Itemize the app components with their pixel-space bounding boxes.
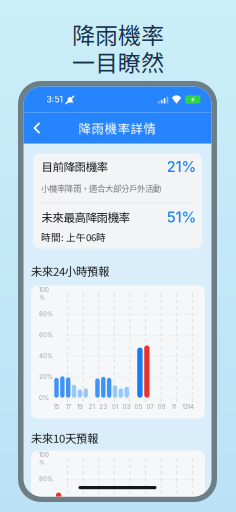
staticText: 19 [77, 403, 83, 410]
staticText: 20% [39, 373, 53, 380]
staticText: 51% [166, 208, 196, 226]
staticText: 21 [89, 403, 95, 410]
staticText: 60% [39, 331, 53, 339]
staticText: 09 [158, 403, 166, 410]
staticText: 40% [39, 352, 53, 360]
staticText: 21% [166, 157, 196, 176]
staticText: 14 [188, 403, 194, 410]
staticText: 降雨機率 [72, 17, 164, 51]
staticText: 時間: 上午06時 [41, 230, 106, 244]
staticText: 未來最高降雨機率 [41, 209, 129, 225]
staticText: 未來24小時預報 [31, 262, 109, 279]
staticText: 07 [147, 403, 154, 410]
staticText: 01 [112, 403, 118, 410]
staticText: 80% [39, 475, 53, 483]
staticText: 15 [53, 403, 59, 410]
staticText: 80% [39, 310, 53, 318]
staticText: 100 [39, 451, 49, 458]
staticText: 降雨機率詳情 [78, 119, 156, 137]
staticText: 0% [39, 394, 49, 401]
button[interactable]: Back [23, 115, 53, 141]
staticText: 一目瞭然 [72, 45, 164, 78]
staticText: 05 [134, 403, 142, 410]
staticText: % [39, 294, 45, 301]
staticText: 小機率降雨，適合大部分戶外活動 [41, 182, 161, 194]
staticText: 未來10天預報 [31, 429, 98, 446]
staticText: 03 [123, 403, 131, 410]
staticText: 13 [182, 403, 188, 410]
staticText: 17 [66, 403, 71, 410]
staticText: % [39, 459, 45, 466]
staticText: 目前降雨機率 [41, 158, 107, 175]
staticText: 100 [39, 286, 49, 293]
staticText: 11 [171, 403, 175, 410]
staticText: 23 [99, 403, 107, 410]
staticText: 3:51 [46, 94, 62, 104]
